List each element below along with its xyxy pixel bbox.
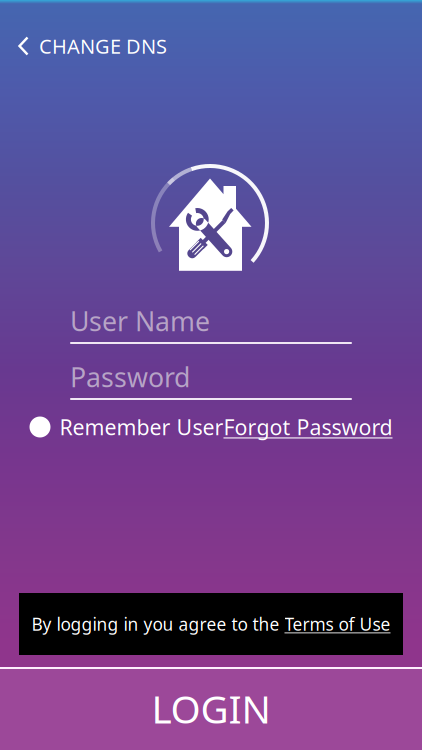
button[interactable]: CHANGE DNS: [0, 24, 179, 68]
staticText: By logging in you agree to the: [31, 612, 284, 635]
button[interactable]: By logging in you agree to the: [19, 593, 403, 655]
staticText: LOGIN: [151, 683, 270, 734]
button[interactable]: LOGIN: [0, 667, 422, 750]
button[interactable]: Forgot Password: [223, 412, 392, 442]
staticText: User Name: [70, 303, 210, 339]
button[interactable]: Remember User: [29, 412, 223, 442]
staticText: Terms of Use: [284, 612, 390, 635]
staticText: Forgot Password: [223, 413, 392, 441]
staticText: Password: [70, 359, 190, 395]
staticText: Remember User: [59, 413, 223, 441]
staticText: CHANGE DNS: [39, 33, 167, 59]
